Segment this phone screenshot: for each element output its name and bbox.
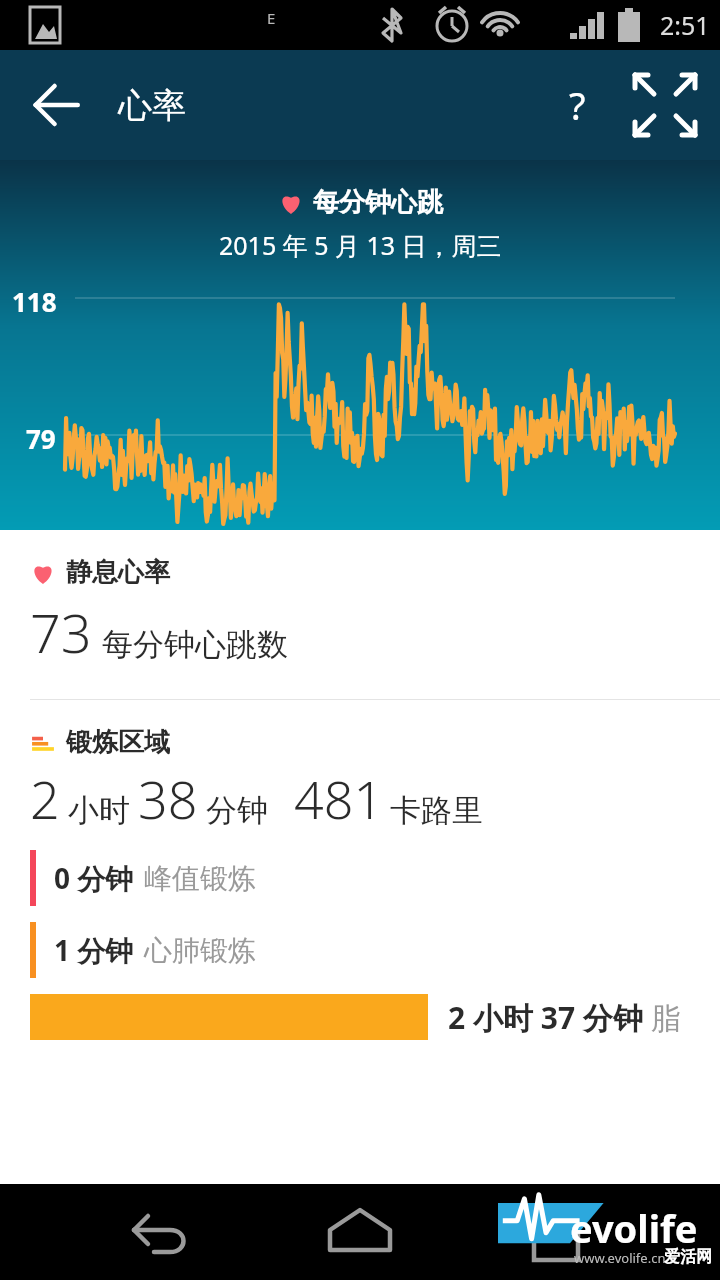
staticText: 卡路里 <box>390 791 483 830</box>
staticText: 小时 <box>68 791 130 830</box>
button[interactable]: Back <box>22 71 90 139</box>
staticText: 118 <box>12 284 57 319</box>
staticText: 心肺锻炼 <box>144 933 256 968</box>
button[interactable]: Back <box>120 1194 196 1270</box>
staticText: www.evolife.cn <box>574 1249 666 1267</box>
button[interactable]: Recent apps <box>524 1194 600 1270</box>
staticText: 0 分钟 <box>54 859 134 897</box>
staticText: 静息心率 <box>66 556 170 589</box>
staticText: 1 分钟 <box>54 931 134 969</box>
staticText: 脂 <box>651 1000 681 1038</box>
staticText: 79 <box>26 421 56 456</box>
staticText: E <box>267 8 276 28</box>
button[interactable]: Help <box>540 68 614 142</box>
button[interactable]: Full screen <box>628 68 702 142</box>
button[interactable]: Home <box>317 1189 403 1275</box>
button[interactable]: 1 分钟 <box>30 922 720 978</box>
staticText: 爱活网 <box>664 1247 712 1267</box>
staticText: 分钟 <box>206 791 268 830</box>
staticText: 每分钟心跳 <box>313 186 443 219</box>
staticText: 2 <box>30 763 60 834</box>
staticText: 心率 <box>118 84 186 127</box>
staticText: 峰值锻炼 <box>144 861 256 896</box>
staticText: 481 <box>294 763 384 834</box>
staticText: 2:51 <box>660 8 710 42</box>
staticText: 38 <box>138 763 198 834</box>
staticText: 2015 年 5 月 13 日，周三 <box>219 228 502 262</box>
staticText: 73 <box>30 595 92 669</box>
staticText: ? <box>569 79 586 131</box>
staticText: 2 小时 37 分钟 <box>448 997 643 1038</box>
staticText: 锻炼区域 <box>66 726 170 759</box>
staticText: 每分钟心跳数 <box>102 625 288 664</box>
button[interactable]: 0 分钟 <box>30 850 720 906</box>
staticText: evolife <box>570 1202 698 1254</box>
